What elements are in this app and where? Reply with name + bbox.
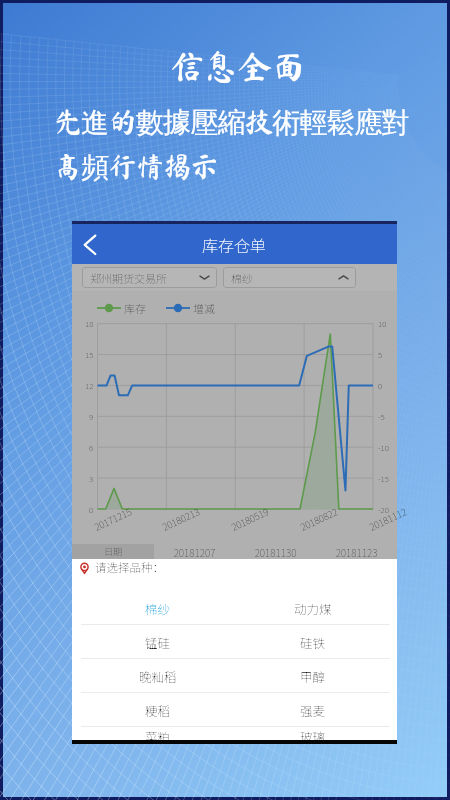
staticText: 0 [89, 504, 94, 516]
staticText: 动力煤 [294, 599, 332, 617]
staticText: 6 [89, 442, 94, 454]
staticText: 锰硅 [145, 633, 171, 651]
staticText: 棉纱 [145, 599, 171, 617]
button[interactable]: 郑州期货交易所 [82, 267, 217, 288]
staticText: 库存仓单 [202, 233, 267, 256]
staticText: 增减 [193, 300, 215, 316]
staticText: 18 [85, 318, 94, 330]
staticText: 20181207 [154, 545, 235, 559]
staticText: 先進的數據壓縮技術輕鬆應對 [54, 105, 409, 140]
staticText: 20180213 [160, 504, 202, 534]
button[interactable]: 粳稻 [81, 693, 235, 726]
staticText: 20181123 [316, 545, 397, 559]
staticText: 郑州期货交易所 [90, 270, 199, 286]
staticText: -20 [378, 504, 389, 516]
staticText: 甲醇 [300, 667, 326, 685]
staticText: 20181130 [235, 545, 316, 559]
staticText: 库存 [124, 300, 146, 316]
staticText: 高頻行情揭示 [54, 150, 218, 185]
button[interactable]: Back [72, 224, 108, 264]
button[interactable]: 玻璃 [235, 727, 390, 740]
staticText: 15 [85, 349, 94, 361]
button[interactable]: 晚籼稻 [81, 659, 235, 692]
staticText: 20181112 [367, 504, 409, 534]
button[interactable]: 硅铁 [235, 625, 390, 658]
staticText: 5 [378, 349, 383, 361]
button[interactable]: 动力煤 [235, 591, 390, 624]
staticText: 9 [89, 411, 94, 423]
staticText: 日期 [104, 545, 123, 558]
staticText: 玻璃 [300, 727, 326, 740]
staticText: -10 [378, 442, 389, 454]
staticText: 20180519 [229, 504, 271, 534]
staticText: 请选择品种： [95, 559, 164, 576]
staticText: 信息全面 [170, 49, 306, 83]
staticText: 10 [378, 318, 387, 330]
staticText: 棉纱 [231, 270, 338, 286]
staticText: 粳稻 [145, 701, 171, 719]
button[interactable]: 菜粕 [81, 727, 235, 740]
staticText: -5 [378, 411, 385, 423]
staticText: 菜粕 [145, 727, 171, 740]
staticText: 20171215 [92, 504, 134, 534]
staticText: 12 [85, 380, 94, 392]
button[interactable]: 锰硅 [81, 625, 235, 658]
staticText: 晚籼稻 [139, 667, 177, 685]
staticText: -15 [378, 473, 389, 485]
button[interactable]: 甲醇 [235, 659, 390, 692]
button[interactable]: 棉纱 [223, 267, 356, 288]
staticText: 3 [89, 473, 94, 485]
staticText: 0 [378, 380, 383, 392]
staticText: 强麦 [300, 701, 326, 719]
button[interactable]: 棉纱 [81, 591, 235, 624]
staticText: 硅铁 [300, 633, 326, 651]
button[interactable]: 强麦 [235, 693, 390, 726]
staticText: 20180822 [298, 504, 340, 534]
